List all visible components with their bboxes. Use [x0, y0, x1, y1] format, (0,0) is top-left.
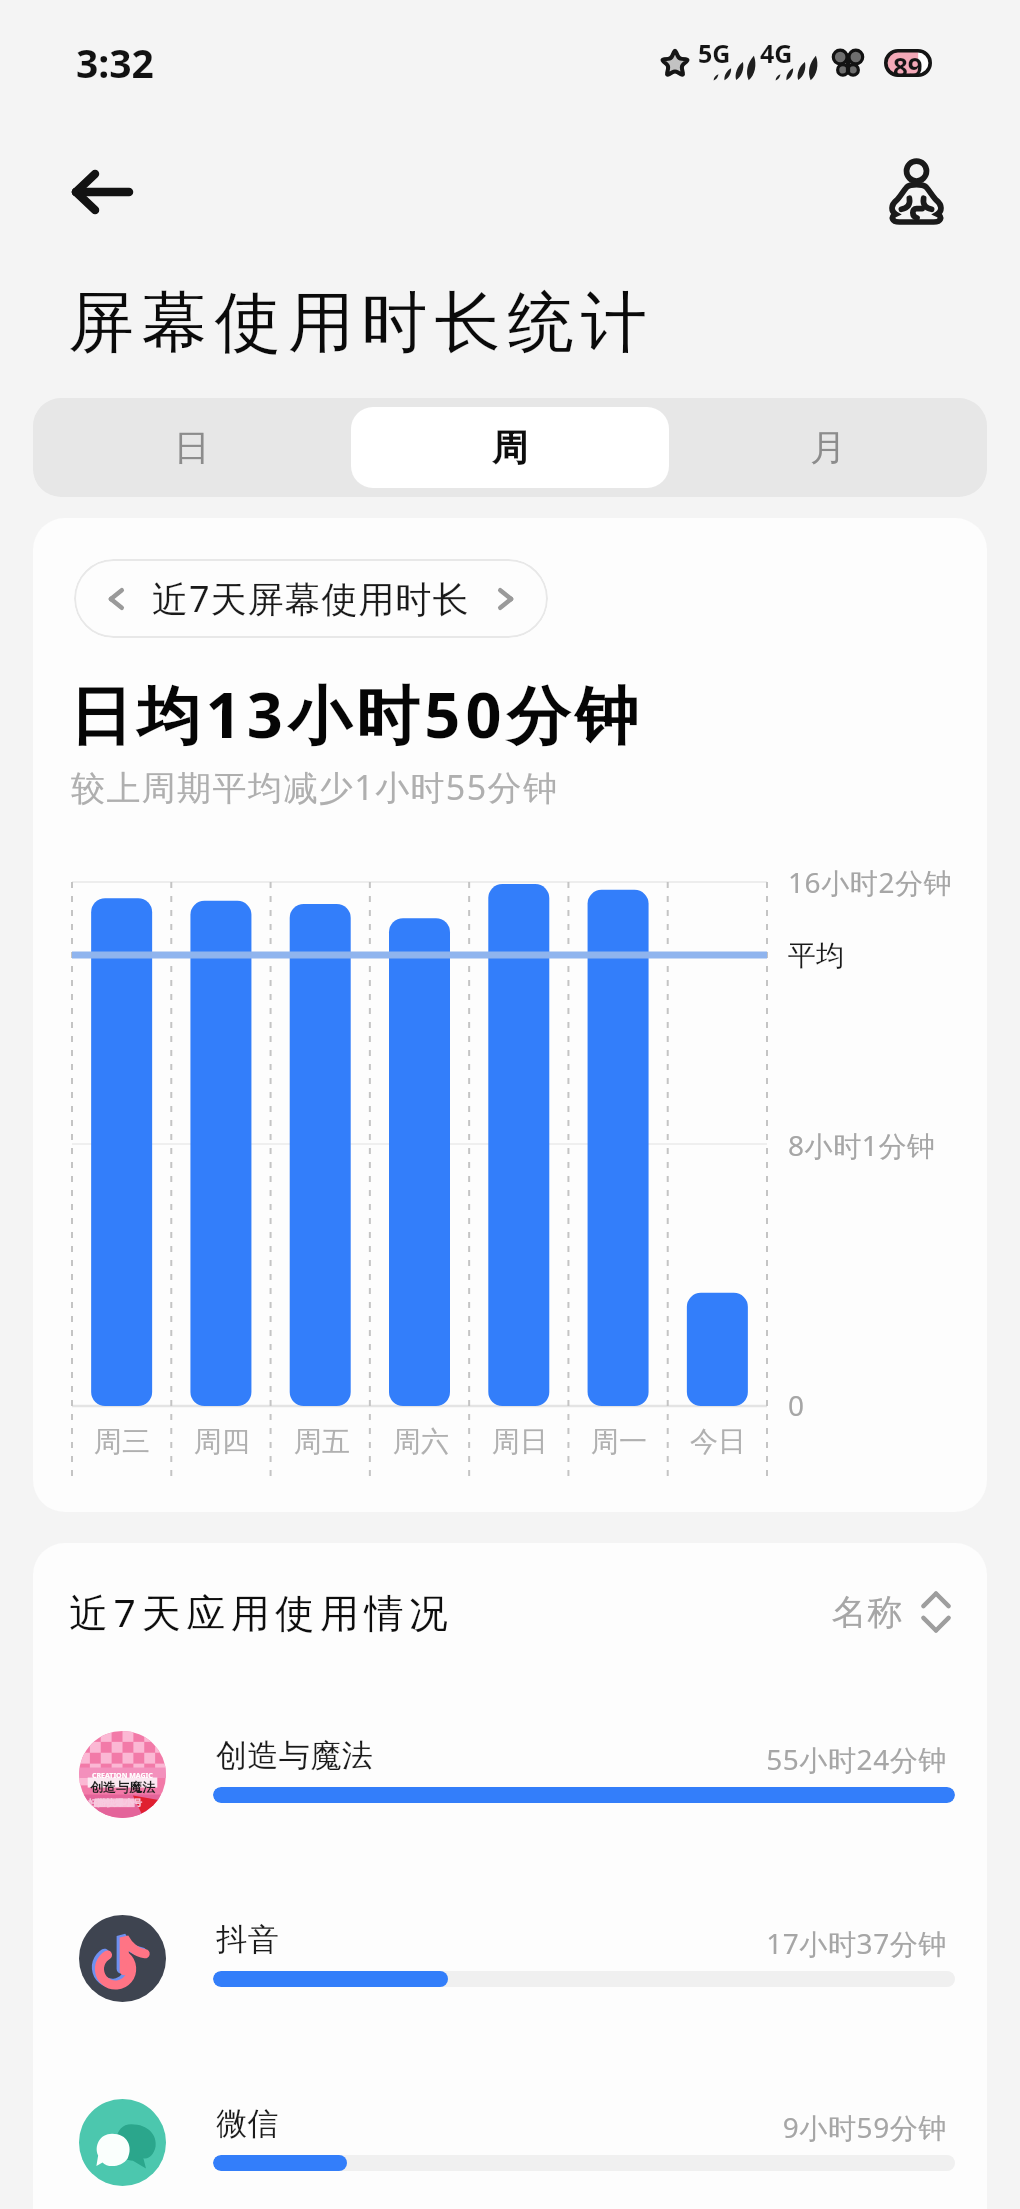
staticText: 月 — [810, 425, 846, 470]
staticText: 好游快爆小号 — [88, 1797, 142, 1808]
staticText: 近7天应用使用情况 — [69, 1585, 454, 1638]
staticText: 近7天屏幕使用时长 — [152, 574, 470, 623]
staticText: 名称 — [831, 1590, 903, 1634]
staticText: 周六 — [393, 1424, 449, 1459]
staticText: 4G — [760, 36, 793, 70]
staticText: 创造与魔法 — [216, 1736, 374, 1775]
staticText: 55小时24分钟 — [73, 1740, 947, 1778]
staticText: 周五 — [294, 1424, 350, 1459]
staticText: 16小时2分钟 — [788, 863, 953, 901]
button[interactable]: 近7天屏幕使用时长 — [74, 559, 548, 638]
staticText: 日均13小时50分钟 — [69, 671, 644, 757]
staticText: 平均 — [788, 938, 844, 973]
button[interactable]: Back — [58, 161, 146, 223]
staticText: 3:32 — [76, 36, 154, 89]
staticText: CREATION MAGIC — [92, 1771, 153, 1781]
button[interactable]: CREATION MAGIC — [73, 1714, 947, 1834]
button[interactable]: 日 — [33, 407, 351, 488]
staticText: 周一 — [591, 1424, 647, 1459]
staticText: 较上周期平均减少1小时55分钟 — [71, 764, 559, 810]
staticText: 今日 — [690, 1424, 746, 1459]
staticText: 9小时59分钟 — [73, 2108, 947, 2146]
staticText: 8小时1分钟 — [788, 1126, 936, 1164]
staticText: 89 — [893, 49, 923, 77]
staticText: 屏幕使用时长统计 — [68, 281, 655, 364]
button[interactable]: 抖音 — [73, 1898, 947, 2018]
staticText: 0 — [788, 1386, 805, 1424]
button[interactable]: 周 — [351, 407, 669, 488]
staticText: 日 — [174, 425, 210, 470]
staticText: 周四 — [194, 1424, 250, 1459]
staticText: 5G — [698, 36, 731, 70]
button[interactable]: 月 — [669, 407, 987, 488]
staticText: 周日 — [492, 1424, 548, 1459]
staticText: 周三 — [94, 1424, 150, 1459]
staticText: 抖音 — [216, 1920, 279, 1959]
button[interactable]: 名称 — [831, 1585, 951, 1639]
button[interactable]: 微信 — [73, 2082, 947, 2202]
staticText: 17小时37分钟 — [73, 1924, 947, 1962]
button[interactable]: Focus mode — [888, 158, 945, 225]
staticText: 周 — [492, 425, 528, 470]
staticText: 创造与魔法 — [90, 1779, 155, 1795]
staticText: 微信 — [216, 2104, 279, 2143]
